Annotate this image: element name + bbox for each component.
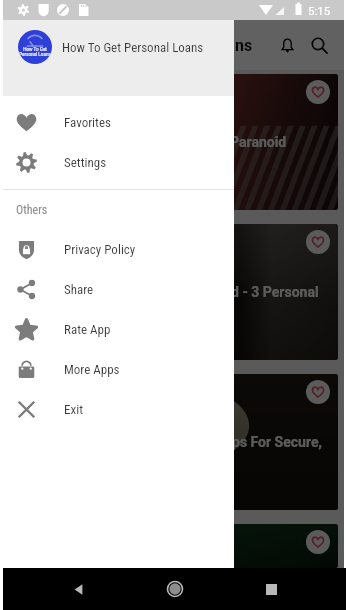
staticText: Settings <box>64 155 107 170</box>
staticText: Personal Loans <box>19 52 51 57</box>
button[interactable]: Privacy Policy <box>3 229 234 269</box>
staticText: More Apps <box>64 362 120 377</box>
button[interactable]: Favorite <box>306 530 330 554</box>
button[interactable]: Home <box>154 568 196 610</box>
staticText: 5:15 <box>308 4 331 17</box>
button[interactable]: Share <box>3 269 234 309</box>
button[interactable]: Exit <box>3 389 234 429</box>
button[interactable]: Settings <box>3 142 234 182</box>
button[interactable]: Favorite <box>306 80 330 104</box>
button[interactable]: Favorite <box>9 524 338 568</box>
staticText: Others <box>16 203 48 217</box>
staticText: Favorites <box>64 115 111 130</box>
button[interactable]: Recents <box>250 568 292 610</box>
button[interactable]: Favorite <box>306 230 330 254</box>
button[interactable]: Notifications <box>274 32 300 58</box>
button[interactable]: Rate App <box>3 309 234 349</box>
staticText: Privacy Policy <box>64 242 136 257</box>
staticText: Rate App <box>64 322 111 337</box>
button[interactable]: Back <box>57 568 99 610</box>
staticText: ps For Secure, <box>232 434 322 450</box>
button[interactable]: More Apps <box>3 349 234 389</box>
staticText: How To Get <box>23 47 47 52</box>
staticText: How To Get Personal Loans <box>55 36 253 55</box>
button[interactable]: d - 3 Personal <box>9 224 338 360</box>
staticText: How To Get Personal Loans <box>62 40 204 55</box>
button[interactable]: Search <box>306 32 332 58</box>
button[interactable]: Paranoid <box>9 74 338 210</box>
staticText: Paranoid <box>230 134 287 150</box>
staticText: d - 3 Personal <box>231 284 319 300</box>
button[interactable]: ps For Secure, <box>9 374 338 510</box>
staticText: Share <box>64 282 94 297</box>
button[interactable]: Favorite <box>306 380 330 404</box>
button[interactable]: Favorites <box>3 102 234 142</box>
staticText: Exit <box>64 402 83 417</box>
